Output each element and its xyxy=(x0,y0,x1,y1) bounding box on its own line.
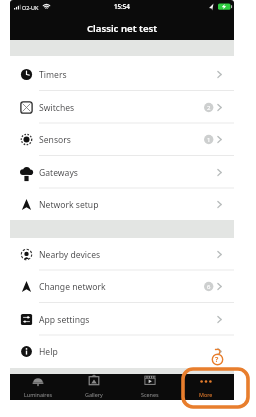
button[interactable]: Luminaires xyxy=(10,374,66,400)
staticText: Network setup xyxy=(39,199,99,211)
staticText: 2 xyxy=(207,104,211,112)
staticText: 15:54 xyxy=(114,2,130,10)
button[interactable]: Gateways xyxy=(10,156,234,189)
staticText: 6 xyxy=(207,283,211,291)
staticText: Scenes xyxy=(141,391,159,398)
button[interactable]: Sensors xyxy=(10,123,234,156)
staticText: Nearby devices xyxy=(39,249,101,261)
button[interactable]: Network setup xyxy=(10,188,234,221)
staticText: More xyxy=(199,391,213,398)
staticText: Luminaires xyxy=(24,391,53,398)
staticText: Timers xyxy=(39,69,67,81)
staticText: Gateways xyxy=(39,167,78,179)
button[interactable]: Change network xyxy=(10,270,234,303)
button[interactable]: Switches xyxy=(10,91,234,124)
staticText: Gallery xyxy=(85,391,103,398)
button[interactable]: App settings xyxy=(10,303,234,336)
staticText: Classic net test xyxy=(87,22,158,35)
button[interactable]: Nearby devices xyxy=(10,238,234,271)
button[interactable]: Gallery xyxy=(66,374,122,400)
button[interactable]: Scenes xyxy=(122,374,178,400)
staticText: Help xyxy=(39,346,58,358)
button[interactable]: Timers xyxy=(10,58,234,91)
staticText: ? xyxy=(215,355,219,365)
staticText: O2-UK xyxy=(22,4,39,11)
button[interactable]: Help xyxy=(10,335,234,368)
staticText: Switches xyxy=(39,102,75,114)
staticText: Change network xyxy=(39,281,106,293)
staticText: 1 xyxy=(207,136,211,144)
staticText: Sensors xyxy=(39,134,71,146)
button[interactable]: More xyxy=(178,374,234,400)
staticText: App settings xyxy=(39,314,90,326)
